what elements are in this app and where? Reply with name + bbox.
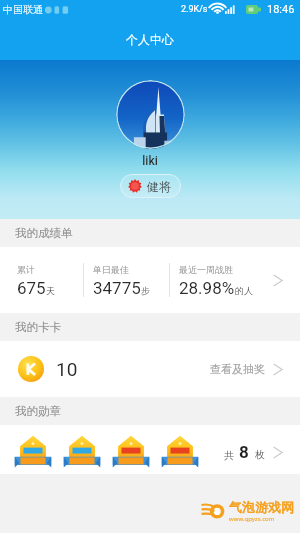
button[interactable]: Profile photo — [116, 80, 185, 149]
button[interactable]: Medal 步数 — [161, 435, 199, 470]
button[interactable]: Medal CBM — [0, 425, 300, 474]
staticText: www.qpyzs.com — [229, 515, 275, 523]
staticText: 共 — [224, 449, 234, 462]
staticText: 我的勋章 — [15, 404, 61, 418]
staticText: 步 — [141, 285, 150, 296]
staticText: 查看及抽奖 — [210, 362, 265, 376]
staticText: 天 — [46, 285, 55, 296]
staticText: 气泡游戏网 — [229, 499, 294, 515]
staticText: 中国联通 — [3, 3, 43, 16]
staticText: 我的卡卡 — [15, 320, 61, 334]
button[interactable]: Medal IBM — [63, 435, 101, 470]
staticText: 我的成绩单 — [15, 226, 73, 240]
staticText: 个人中心 — [126, 32, 174, 47]
staticText: 10 — [56, 358, 78, 380]
staticText: 单日最佳 — [93, 264, 129, 275]
staticText: 枚 — [255, 448, 265, 461]
button[interactable]: 健将 — [120, 174, 181, 198]
staticText: 675 — [17, 278, 46, 298]
button[interactable]: Medal CBM — [14, 435, 52, 470]
staticText: 累计 — [17, 264, 35, 275]
staticText: 最近一周战胜 — [179, 264, 233, 275]
button[interactable]: Medal 步数 — [112, 435, 150, 470]
staticText: 2.9K/s — [181, 4, 208, 15]
staticText: 健将 — [147, 179, 171, 194]
staticText: 18:46 — [267, 3, 295, 16]
staticText: 8 — [239, 442, 249, 462]
staticText: 的人 — [235, 285, 253, 296]
button[interactable]: 10 — [0, 341, 300, 397]
staticText: 34775 — [93, 278, 141, 298]
staticText: liki — [0, 154, 300, 168]
button[interactable]: 累计 — [0, 247, 300, 313]
staticText: 28.98% — [179, 278, 235, 298]
